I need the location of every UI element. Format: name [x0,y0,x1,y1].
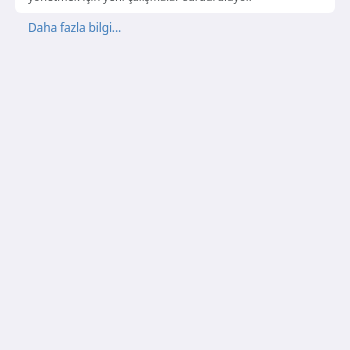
staticText: Daha fazla bilgi... [28,19,122,35]
button[interactable]: Daha fazla bilgi... [22,15,128,39]
staticText: yönetmek için yeni çalışmalar sürdürülüy… [28,0,252,4]
button[interactable]: yönetmek için yeni çalışmalar sürdürülüy… [15,0,335,13]
